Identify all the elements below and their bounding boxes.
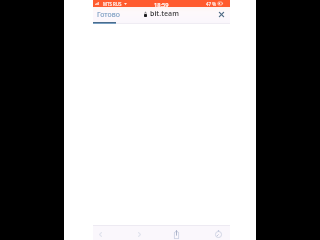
button[interactable]: Reading list [211, 227, 225, 240]
button[interactable]: Готово [96, 9, 121, 21]
staticText: Готово [97, 10, 120, 20]
staticText: 47 % [206, 1, 216, 7]
button[interactable]: Close [216, 9, 227, 20]
button[interactable]: Back [93, 227, 107, 240]
staticText: 18:59 [154, 1, 169, 8]
staticText: MTS RUS [103, 1, 122, 7]
button[interactable]: Share [169, 227, 183, 240]
staticText: bit.team [150, 9, 179, 19]
button[interactable]: Forward [132, 227, 146, 240]
